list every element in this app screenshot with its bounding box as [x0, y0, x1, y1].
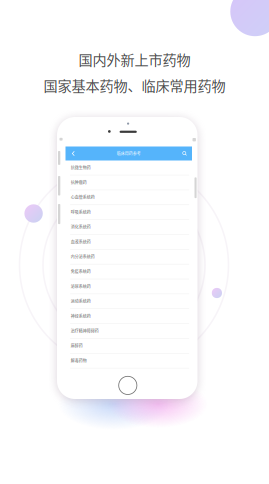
button[interactable]: 麻醉药: [65, 339, 192, 353]
staticText: 免疫系统药: [71, 269, 91, 274]
staticText: 抗微生物药: [71, 165, 91, 171]
button[interactable]: 心血管系统药: [65, 190, 192, 205]
button[interactable]: 治疗精神障碍药: [65, 324, 192, 339]
staticText: 内分泌系统药: [71, 254, 95, 260]
staticText: 解毒药物: [71, 358, 87, 364]
button[interactable]: 内分泌系统药: [65, 250, 192, 264]
staticText: 国家基本药物、临床常用药物: [43, 75, 225, 95]
button[interactable]: 神经系统药: [65, 309, 192, 324]
staticText: 国内外新上市药物: [78, 49, 190, 69]
button[interactable]: Back: [69, 148, 77, 159]
button[interactable]: 抗肿瘤药: [65, 175, 192, 190]
button[interactable]: 消化系统药: [65, 220, 192, 235]
staticText: 抗肿瘤药: [71, 180, 87, 185]
button[interactable]: 泌尿系统药: [65, 279, 192, 294]
staticText: 运动系统药: [71, 298, 91, 304]
staticText: 消化系统药: [71, 224, 91, 230]
button[interactable]: 抗微生物药: [65, 160, 192, 175]
button[interactable]: 免疫系统药: [65, 264, 192, 279]
staticText: 血液系统药: [71, 239, 91, 245]
staticText: 神经系统药: [71, 313, 91, 319]
staticText: 麻醉药: [71, 343, 83, 349]
button[interactable]: 血液系统药: [65, 235, 192, 250]
button[interactable]: 呼吸系统药: [65, 205, 192, 220]
button[interactable]: Search: [179, 148, 190, 159]
staticText: 呼吸系统药: [71, 209, 91, 215]
button[interactable]: 解毒药物: [65, 353, 192, 368]
staticText: 心血管系统药: [71, 194, 95, 200]
staticText: 临床用药参考: [117, 151, 141, 156]
staticText: 泌尿系统药: [71, 284, 91, 289]
button[interactable]: 运动系统药: [65, 294, 192, 309]
staticText: 治疗精神障碍药: [71, 328, 99, 334]
